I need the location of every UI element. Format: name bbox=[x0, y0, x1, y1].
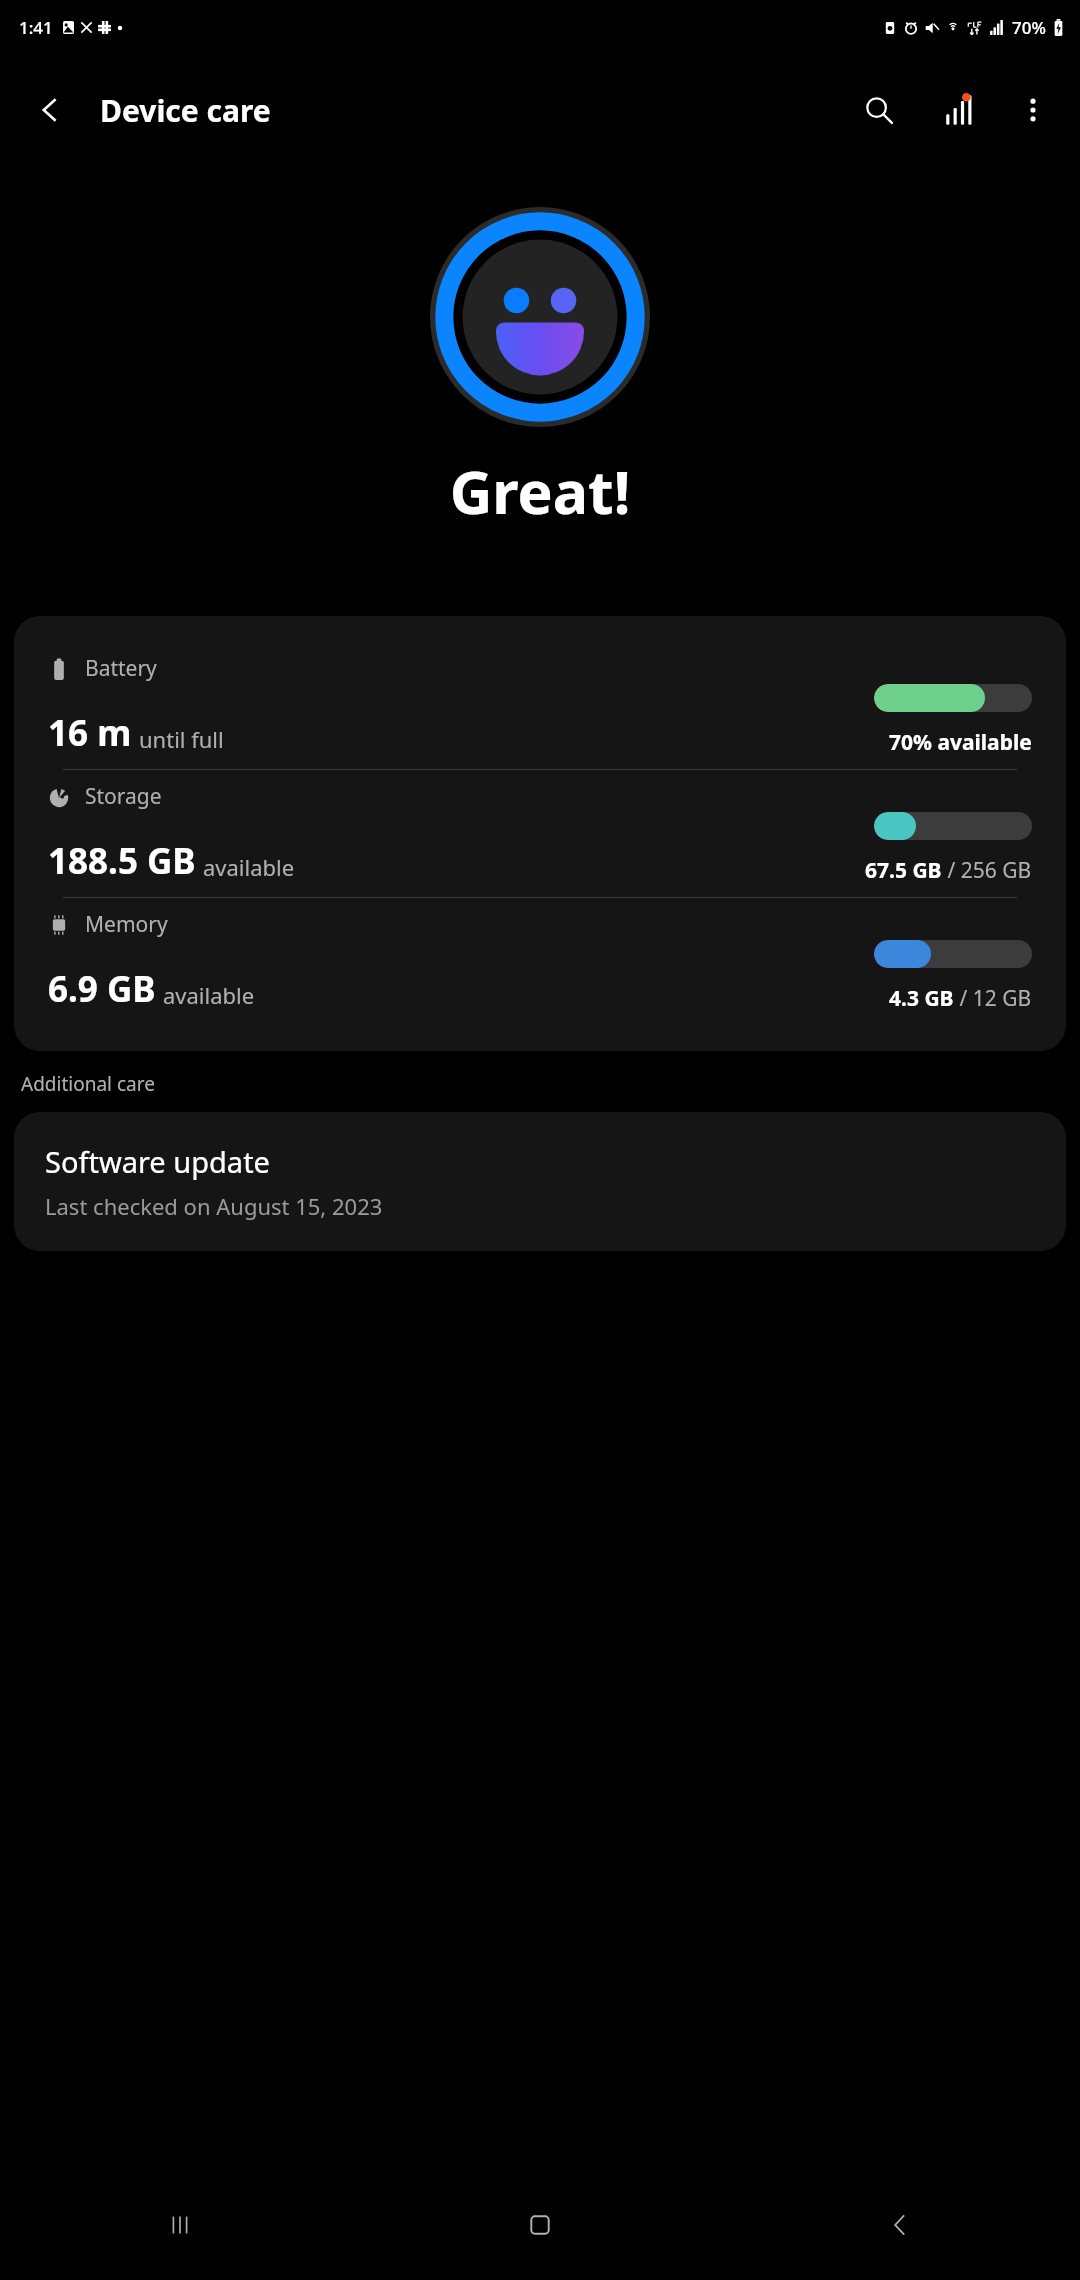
staticText: 70% available bbox=[889, 728, 1032, 757]
button[interactable]: Search bbox=[850, 81, 908, 139]
button[interactable]: Recent apps bbox=[0, 2170, 360, 2280]
staticText: 70% bbox=[1012, 16, 1046, 39]
staticText: Great! bbox=[0, 451, 1080, 531]
button[interactable]: Battery bbox=[14, 642, 1066, 769]
button[interactable]: Storage bbox=[14, 770, 1066, 897]
staticText: available bbox=[163, 980, 255, 1010]
staticText: 4.3 GB bbox=[889, 984, 954, 1013]
button[interactable]: Back bbox=[720, 2170, 1080, 2280]
staticText: / 12 GB bbox=[954, 984, 1032, 1013]
button[interactable]: Diagnostics bbox=[930, 81, 988, 139]
staticText: Battery bbox=[85, 654, 157, 683]
staticText: 6.9 GB bbox=[48, 965, 156, 1013]
staticText: 188.5 GB bbox=[48, 837, 196, 885]
staticText: Software update bbox=[45, 1142, 270, 1181]
staticText: 16 m bbox=[48, 709, 132, 757]
staticText: / 256 GB bbox=[942, 856, 1032, 885]
button[interactable]: Back bbox=[26, 86, 74, 134]
staticText: Device care bbox=[100, 90, 271, 131]
staticText: Storage bbox=[85, 782, 162, 811]
button[interactable]: Software update bbox=[14, 1112, 1066, 1251]
staticText: Memory bbox=[85, 910, 168, 939]
staticText: available bbox=[203, 852, 295, 882]
button[interactable]: More options bbox=[1004, 81, 1062, 139]
staticText: 1:41 bbox=[19, 16, 53, 39]
button[interactable]: Memory bbox=[14, 898, 1066, 1025]
staticText: Last checked on August 15, 2023 bbox=[45, 1191, 383, 1221]
staticText: 67.5 GB bbox=[865, 856, 942, 885]
staticText: until full bbox=[139, 724, 224, 754]
staticText: Additional care bbox=[21, 1071, 155, 1097]
button[interactable]: Home bbox=[360, 2170, 720, 2280]
